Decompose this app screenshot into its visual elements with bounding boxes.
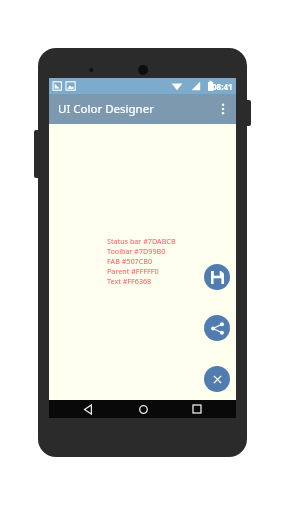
staticText: Status bar #7DABCB	[107, 236, 176, 246]
button[interactable]: More options	[210, 96, 236, 122]
button[interactable]: Save	[204, 264, 230, 290]
button[interactable]: Close	[204, 366, 230, 392]
button[interactable]: Share	[204, 315, 230, 341]
staticText: Text #FF6368	[107, 276, 152, 286]
staticText: FAB #507CB0	[107, 256, 153, 266]
staticText: 08:41	[212, 81, 233, 92]
staticText: Parent #FFFFF0	[107, 266, 159, 276]
button[interactable]: Recents	[182, 400, 212, 418]
button[interactable]: Home	[128, 400, 158, 418]
staticText: UI Color Designer	[58, 101, 154, 117]
staticText: Toolbar #7D99B0	[107, 246, 166, 256]
button[interactable]: Back	[73, 400, 103, 418]
